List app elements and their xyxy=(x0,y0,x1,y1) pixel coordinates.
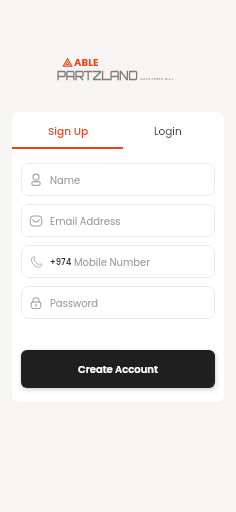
button[interactable]: Sign Up xyxy=(18,115,118,147)
button[interactable]: Password xyxy=(21,286,215,319)
staticText: Mobile Number xyxy=(74,255,150,269)
staticText: ABLE xyxy=(74,55,99,69)
staticText: Login xyxy=(154,124,182,139)
staticText: Name xyxy=(50,173,81,187)
button[interactable]: +974 xyxy=(21,245,215,278)
staticText: AUTO PARTS W.L.L xyxy=(140,76,174,81)
staticText: +974 xyxy=(50,256,72,268)
staticText: Password xyxy=(50,296,99,310)
button[interactable]: Email Address xyxy=(21,204,215,237)
staticText: Sign Up xyxy=(48,124,89,139)
button[interactable]: Login xyxy=(118,115,218,147)
staticText: Create Account xyxy=(78,362,158,376)
staticText: PARTZLAND xyxy=(57,69,138,83)
staticText: Email Address xyxy=(50,214,121,228)
button[interactable]: Name xyxy=(21,163,215,196)
button[interactable]: Create Account xyxy=(21,350,215,388)
